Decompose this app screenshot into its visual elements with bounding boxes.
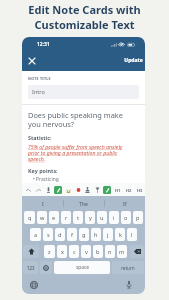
button[interactable]: x	[57, 245, 67, 258]
button[interactable]: Underline	[64, 186, 72, 194]
button[interactable]: Change keyboard	[30, 281, 38, 289]
button[interactable]: s	[43, 228, 53, 241]
staticText: c	[73, 248, 76, 256]
button[interactable]: p	[133, 211, 143, 224]
staticText: b	[96, 248, 100, 256]
button[interactable]: Undo	[24, 186, 32, 194]
button[interactable]: I	[22, 196, 63, 210]
button[interactable]: Close	[26, 55, 38, 67]
button[interactable]: i	[109, 211, 119, 224]
staticText: Update	[124, 57, 143, 64]
staticText: z	[48, 248, 51, 256]
button[interactable]: z	[44, 245, 55, 258]
button[interactable]: r	[61, 211, 71, 224]
staticText: Does public speaking make you nervous?	[28, 110, 123, 130]
staticText: H2	[126, 188, 132, 193]
staticText: Key points:	[28, 167, 58, 174]
button[interactable]: 123	[23, 261, 38, 274]
button[interactable]: t	[73, 211, 83, 224]
button[interactable]: Dictate	[125, 280, 133, 289]
button[interactable]: Update	[123, 55, 144, 66]
staticText: I	[42, 200, 44, 207]
button[interactable]: Intro	[28, 85, 139, 99]
button[interactable]: Eraser	[93, 186, 101, 194]
button[interactable]: H3	[135, 186, 144, 194]
button[interactable]: j	[103, 228, 113, 241]
button[interactable]: Bold	[44, 186, 52, 194]
staticText: q	[28, 214, 32, 222]
staticText: d	[58, 231, 62, 239]
staticText: Intro	[32, 88, 45, 96]
staticText: h	[94, 231, 98, 239]
staticText: y	[89, 214, 92, 222]
staticText: If	[123, 200, 127, 207]
staticText: v	[85, 248, 88, 256]
button[interactable]: space	[54, 261, 110, 274]
button[interactable]: m	[117, 245, 127, 258]
staticText: j	[107, 231, 109, 239]
button[interactable]: f	[67, 228, 77, 241]
button[interactable]: Backspace	[130, 245, 144, 258]
button[interactable]: q	[24, 211, 35, 224]
staticText: t	[77, 214, 80, 222]
button[interactable]: b	[93, 245, 103, 258]
button[interactable]: Stamp	[83, 186, 91, 194]
button[interactable]: y	[85, 211, 95, 224]
staticText: Customizable Text	[34, 17, 135, 32]
staticText: 123	[27, 265, 35, 271]
staticText: a	[34, 231, 38, 239]
staticText: x	[61, 248, 64, 256]
staticText: i	[113, 214, 115, 222]
button[interactable]: d	[55, 228, 65, 241]
staticText: The	[79, 200, 89, 207]
staticText: 75% of people suffer from speech anxiety…	[28, 143, 123, 163]
button[interactable]: Redo	[34, 186, 42, 194]
button[interactable]: n	[105, 245, 115, 258]
button[interactable]: Text background	[54, 186, 62, 194]
staticText: return	[121, 265, 135, 271]
staticText: e	[52, 214, 56, 222]
button[interactable]: return	[112, 261, 144, 274]
button[interactable]: c	[69, 245, 79, 258]
button[interactable]: h	[91, 228, 101, 241]
button[interactable]: Emoji	[40, 261, 52, 274]
staticText: o	[124, 214, 128, 222]
staticText: space	[76, 264, 89, 271]
button[interactable]: If	[105, 196, 145, 210]
staticText: 12:31	[37, 41, 50, 48]
button[interactable]: e	[49, 211, 59, 224]
button[interactable]: o	[121, 211, 131, 224]
staticText: g	[82, 231, 86, 239]
staticText: u	[100, 214, 104, 222]
staticText: r	[65, 214, 68, 222]
staticText: Statistic:	[28, 134, 52, 141]
button[interactable]: H2	[124, 186, 133, 194]
staticText: NOTE TITLE	[28, 76, 51, 81]
button[interactable]: g	[79, 228, 89, 241]
button[interactable]: Shift	[23, 245, 39, 258]
button[interactable]: Text colour	[74, 186, 82, 194]
button[interactable]: k	[115, 228, 125, 241]
staticText: l	[131, 231, 133, 239]
staticText: f	[71, 231, 73, 239]
staticText: Edit Note Cards with	[28, 2, 141, 17]
button[interactable]: w	[37, 211, 47, 224]
staticText: • Practicing	[33, 176, 59, 183]
staticText: m	[119, 248, 125, 256]
staticText: H1	[115, 188, 121, 193]
staticText: k	[119, 231, 122, 239]
staticText: H3	[137, 188, 143, 193]
button[interactable]: H1	[113, 186, 122, 194]
button[interactable]: v	[81, 245, 91, 258]
staticText: n	[108, 248, 112, 256]
button[interactable]: The	[64, 196, 104, 210]
staticText: p	[136, 214, 140, 222]
staticText: s	[47, 231, 50, 239]
button[interactable]: l	[127, 228, 137, 241]
staticText: w	[40, 214, 45, 222]
button[interactable]: a	[30, 228, 41, 241]
button[interactable]: u	[97, 211, 107, 224]
button[interactable]: Highlight	[103, 186, 111, 194]
